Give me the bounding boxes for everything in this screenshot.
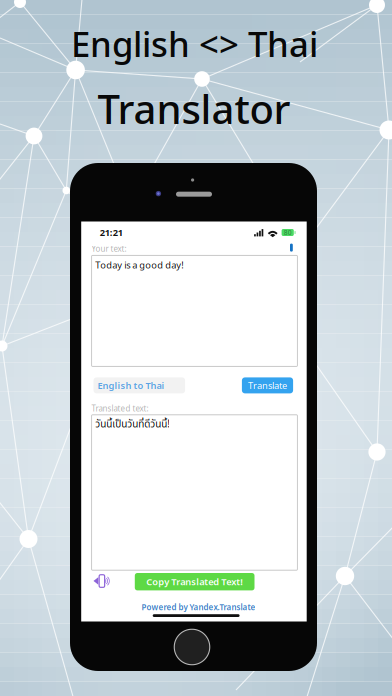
- button[interactable]: Powered by Yandex.Translate: [141, 602, 255, 612]
- button[interactable]: Copy Translated Text!: [135, 573, 254, 590]
- button[interactable]: English to Thai: [93, 377, 185, 393]
- staticText: Translate: [248, 379, 287, 392]
- staticText: 80: [284, 228, 292, 237]
- staticText: Your text:: [92, 243, 127, 254]
- staticText: Today is a good day!: [95, 259, 184, 271]
- staticText: English <> Thai: [71, 20, 318, 66]
- staticText: Translated text:: [92, 403, 149, 414]
- staticText: วันนี้เป็นวันที่ดีวันนี้!: [95, 417, 170, 432]
- button[interactable]: Info: [290, 244, 293, 252]
- staticText: 21:21: [100, 226, 123, 239]
- button[interactable]: Speak translation: [93, 574, 110, 588]
- staticText: Copy Translated Text!: [146, 575, 243, 588]
- staticText: Translator: [97, 82, 290, 135]
- staticText: English to Thai: [97, 379, 164, 392]
- button[interactable]: Translate: [242, 377, 293, 393]
- staticText: Powered by Yandex.Translate: [141, 602, 255, 612]
